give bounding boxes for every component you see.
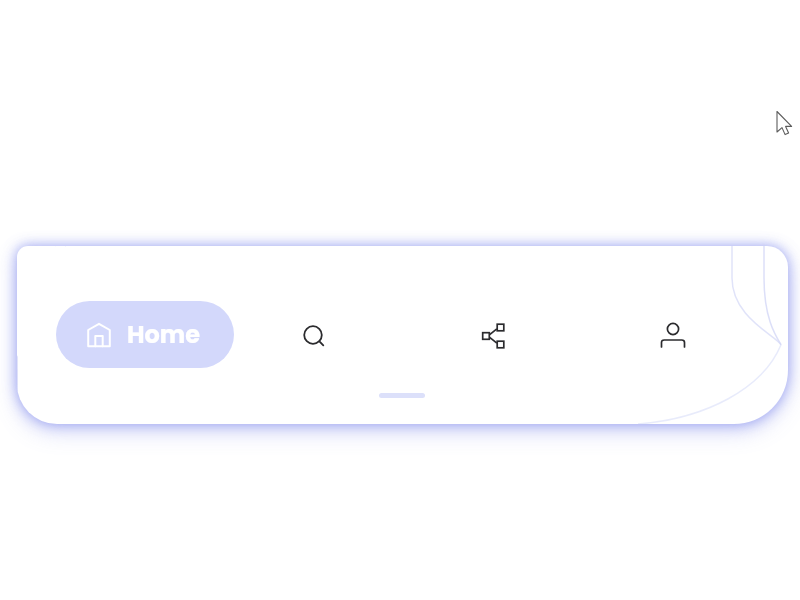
staticText: Home <box>127 318 201 352</box>
button[interactable]: Home <box>56 301 234 368</box>
button[interactable]: Share <box>470 312 518 360</box>
button[interactable]: Profile <box>649 311 697 359</box>
button[interactable]: Search <box>291 313 339 361</box>
